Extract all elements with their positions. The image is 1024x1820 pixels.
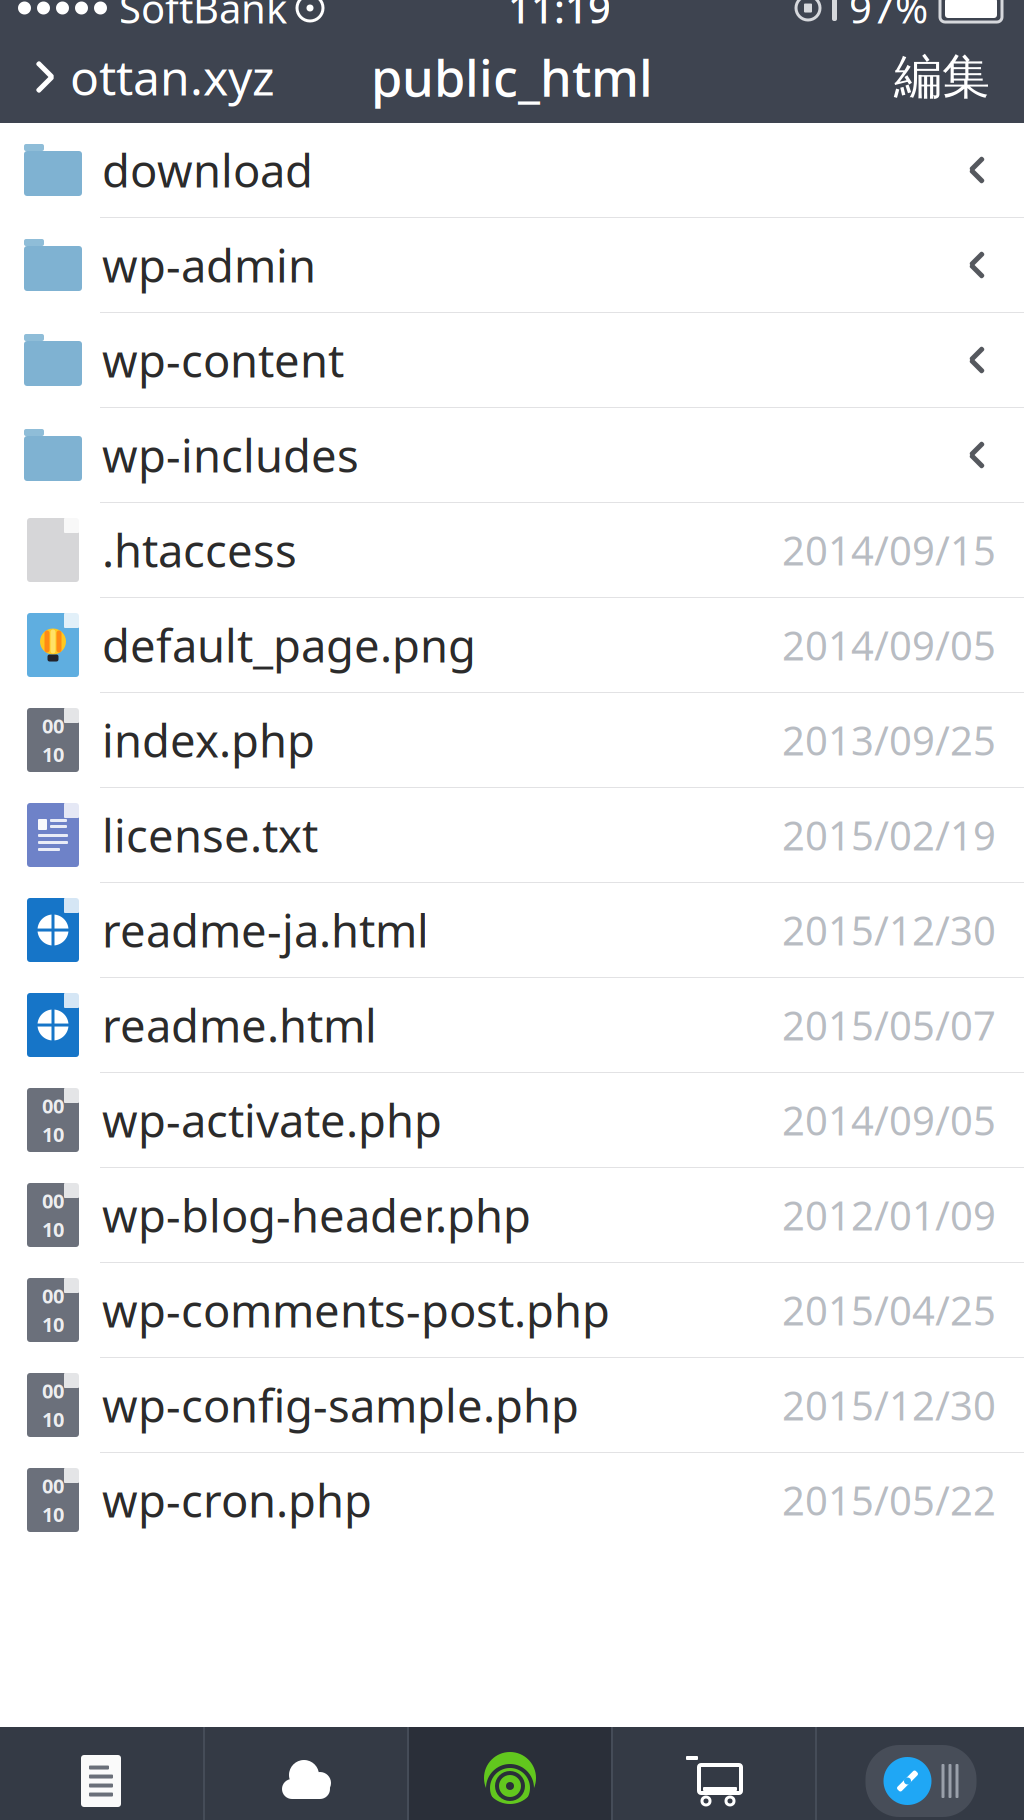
staticText: 10 bbox=[42, 741, 64, 768]
button[interactable]: wp-admin bbox=[0, 218, 1024, 312]
button[interactable]: default_page.png bbox=[0, 598, 1024, 692]
staticText: wp-comments-post.php bbox=[102, 1280, 610, 1340]
staticText: 00 bbox=[42, 1377, 64, 1404]
staticText: default_page.png bbox=[102, 615, 476, 675]
button[interactable]: download bbox=[0, 123, 1024, 217]
button[interactable]: .htaccess bbox=[0, 503, 1024, 597]
staticText: 97% bbox=[849, 0, 928, 34]
staticText: 00 bbox=[42, 1282, 64, 1309]
staticText: 2015/05/07 bbox=[782, 998, 996, 1051]
button[interactable]: ottan.xyz bbox=[0, 33, 275, 121]
button[interactable]: Store bbox=[613, 1727, 815, 1820]
button[interactable]: 00 bbox=[0, 1263, 1024, 1357]
staticText: wp-blog-header.php bbox=[102, 1185, 531, 1245]
button[interactable]: 00 bbox=[0, 1453, 1024, 1547]
button[interactable]: license.txt bbox=[0, 788, 1024, 882]
staticText: 2015/12/30 bbox=[782, 903, 996, 956]
button[interactable]: Cloud storage bbox=[205, 1727, 407, 1820]
staticText: public_html bbox=[371, 43, 653, 111]
staticText: wp-includes bbox=[102, 425, 359, 485]
staticText: 00 bbox=[42, 1092, 64, 1119]
staticText: .htaccess bbox=[102, 520, 297, 580]
staticText: 10 bbox=[42, 1311, 64, 1338]
staticText: 2015/02/19 bbox=[782, 808, 996, 861]
staticText: readme.html bbox=[102, 995, 377, 1055]
staticText: wp-cron.php bbox=[102, 1470, 372, 1530]
staticText: index.php bbox=[102, 710, 315, 770]
staticText: 2014/09/05 bbox=[782, 618, 996, 671]
staticText: ottan.xyz bbox=[70, 45, 275, 109]
staticText: wp-config-sample.php bbox=[102, 1375, 579, 1435]
staticText: 2015/12/30 bbox=[782, 1378, 996, 1431]
staticText: readme-ja.html bbox=[102, 900, 429, 960]
button[interactable]: 00 bbox=[0, 1073, 1024, 1167]
button[interactable]: 00 bbox=[0, 1168, 1024, 1262]
staticText: 編集 bbox=[894, 47, 990, 106]
button[interactable]: Browser bbox=[817, 1727, 1024, 1820]
staticText: wp-activate.php bbox=[102, 1090, 442, 1150]
staticText: 2015/04/25 bbox=[782, 1283, 996, 1336]
staticText: wp-admin bbox=[102, 235, 316, 295]
staticText: 10 bbox=[42, 1406, 64, 1433]
button[interactable]: readme.html bbox=[0, 978, 1024, 1072]
staticText: 2013/09/25 bbox=[782, 713, 996, 766]
button[interactable]: 00 bbox=[0, 693, 1024, 787]
button[interactable]: Local files bbox=[0, 1727, 203, 1820]
staticText: license.txt bbox=[102, 805, 318, 865]
button[interactable]: Network, selected bbox=[409, 1727, 611, 1820]
staticText: download bbox=[102, 140, 313, 200]
staticText: wp-content bbox=[102, 330, 344, 390]
button[interactable]: wp-content bbox=[0, 313, 1024, 407]
staticText: 00 bbox=[42, 712, 64, 739]
button[interactable]: wp-includes bbox=[0, 408, 1024, 502]
button[interactable]: 編集 bbox=[894, 35, 1024, 118]
staticText: 2012/01/09 bbox=[782, 1188, 996, 1241]
button[interactable]: readme-ja.html bbox=[0, 883, 1024, 977]
staticText: 00 bbox=[42, 1187, 64, 1214]
staticText: 00 bbox=[42, 1472, 64, 1499]
button[interactable]: 00 bbox=[0, 1358, 1024, 1452]
staticText: 10 bbox=[42, 1216, 64, 1243]
staticText: 2014/09/15 bbox=[782, 523, 996, 576]
staticText: 10 bbox=[42, 1121, 64, 1148]
staticText: 2015/05/22 bbox=[782, 1473, 996, 1526]
staticText: 2014/09/05 bbox=[782, 1093, 996, 1146]
staticText: 10 bbox=[42, 1501, 64, 1528]
staticText: 11:19 bbox=[508, 0, 611, 34]
staticText: SoftBank bbox=[119, 0, 287, 34]
